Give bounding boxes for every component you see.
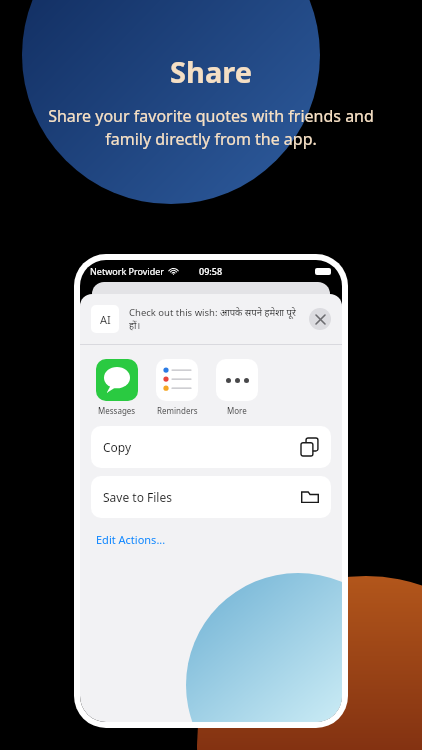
staticText: Edit Actions... [96, 532, 166, 547]
staticText: Save to Files [103, 489, 301, 505]
staticText: Network Provider [90, 265, 165, 277]
button[interactable]: Messages [96, 359, 138, 416]
staticText: Copy [103, 439, 301, 455]
button[interactable]: Edit Actions... [96, 528, 166, 551]
button[interactable]: Reminders [156, 359, 198, 416]
staticText: AI [100, 312, 111, 327]
staticText: Share [170, 52, 252, 91]
button[interactable]: More [216, 359, 258, 416]
button[interactable]: Save to Files [91, 476, 331, 518]
staticText: Reminders [157, 405, 198, 416]
staticText: 09:58 [199, 265, 223, 277]
button[interactable]: Copy [91, 426, 331, 468]
staticText: Share your favorite quotes with friends … [30, 105, 392, 150]
staticText: Check out this wish: आपके सपने हमेशा पूर… [129, 306, 301, 332]
button[interactable]: Close [309, 308, 331, 330]
staticText: Messages [98, 405, 136, 416]
staticText: More [227, 405, 247, 416]
